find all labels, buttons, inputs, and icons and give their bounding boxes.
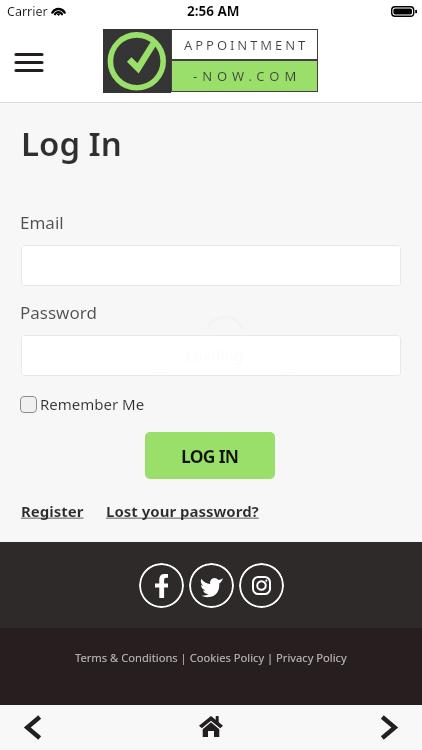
staticText: Remember Me — [40, 394, 145, 414]
button[interactable]: Instagram — [239, 563, 284, 608]
button[interactable]: Register — [21, 501, 84, 521]
staticText: Email — [20, 211, 64, 234]
staticText: -NOW.COM — [193, 67, 302, 85]
button[interactable]: Remember Me — [20, 394, 145, 414]
staticText: Terms & Conditions | Cookies Policy | Pr… — [75, 650, 347, 665]
staticText: APPOINTMENT — [184, 36, 309, 54]
button[interactable]: Forward — [356, 705, 422, 750]
button[interactable] — [21, 245, 401, 286]
button[interactable]: Home — [166, 705, 256, 750]
staticText: 2:56 AM — [187, 2, 240, 20]
staticText: LOG IN — [181, 444, 239, 468]
button[interactable]: Twitter — [189, 563, 234, 608]
staticText: Carrier — [7, 3, 48, 20]
button[interactable]: Back — [0, 705, 66, 750]
button[interactable]: Lost your password? — [106, 501, 259, 521]
staticText: Password — [20, 301, 97, 324]
staticText: Log In — [21, 121, 122, 166]
button[interactable]: Menu — [8, 41, 50, 83]
button[interactable] — [21, 335, 401, 376]
button[interactable]: Facebook — [139, 563, 184, 608]
button[interactable]: LOG IN — [145, 432, 275, 479]
